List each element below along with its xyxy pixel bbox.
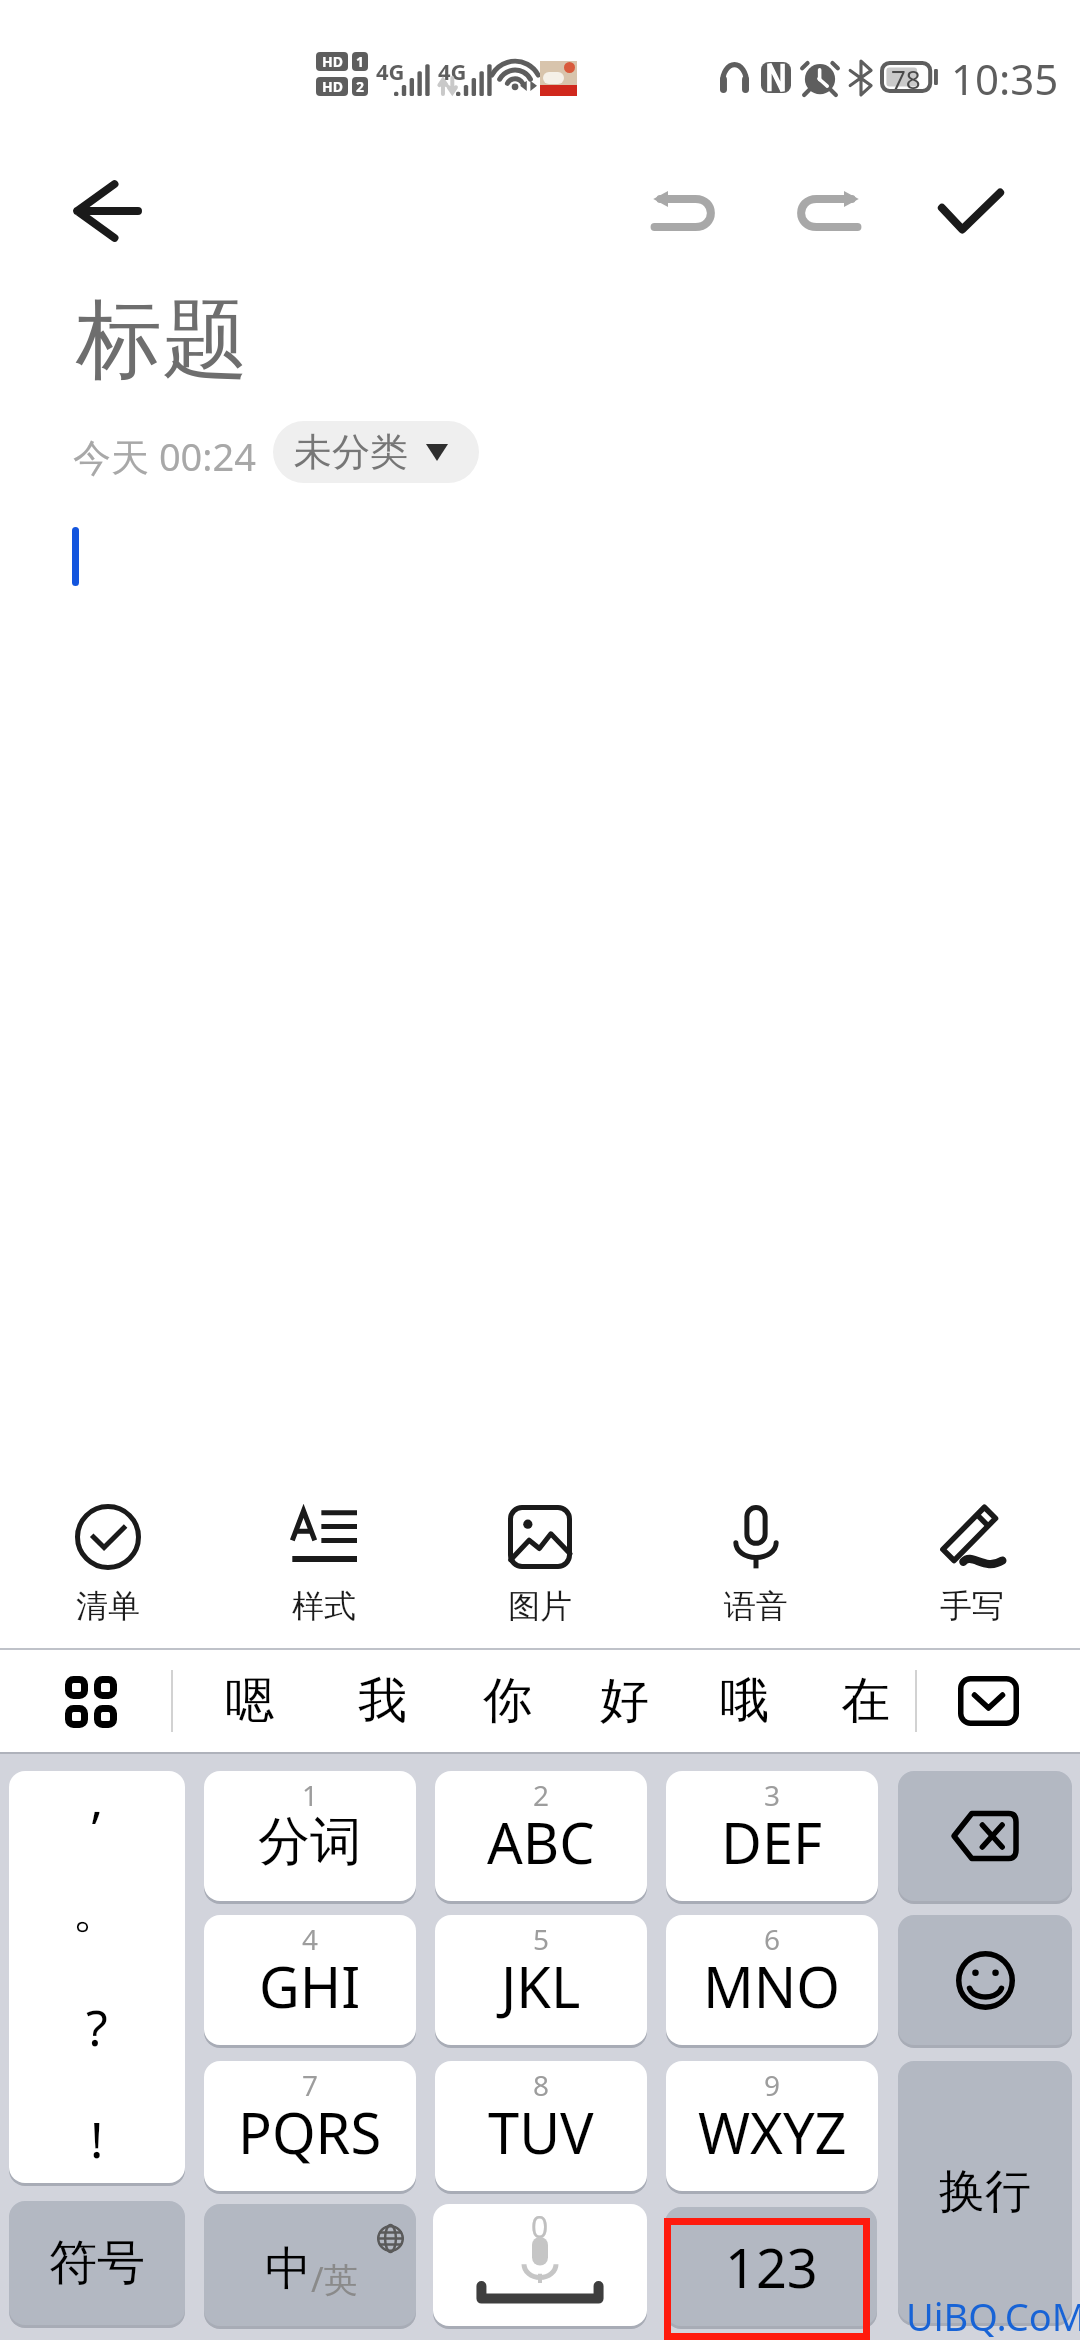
staticText: 0 [531, 2206, 549, 2247]
button[interactable]: Undo [629, 156, 739, 266]
staticText: 手写 [940, 1586, 1004, 1626]
button[interactable]: 样式 [216, 1502, 432, 1626]
button[interactable]: 哦 [700, 1653, 788, 1749]
staticText: 1 [356, 52, 365, 71]
staticText: ! [90, 2105, 104, 2173]
staticText: 123 [725, 2230, 818, 2304]
button[interactable]: 图片 [432, 1502, 648, 1626]
button[interactable]: 在 [821, 1653, 909, 1749]
button[interactable]: 嗯 [205, 1653, 293, 1749]
staticText: 嗯 [225, 1670, 274, 1732]
button[interactable]: 语音 [648, 1502, 864, 1626]
staticText: 今天 00:24 [73, 430, 257, 482]
staticText: 你 [483, 1670, 532, 1732]
button[interactable]: 你 [463, 1653, 551, 1749]
staticText: ABC [487, 1804, 595, 1880]
button[interactable]: Back [42, 156, 172, 266]
staticText: PQRS [238, 2094, 382, 2170]
button[interactable]: 未分类 [273, 421, 479, 483]
button[interactable]: 手写 [864, 1502, 1080, 1626]
staticText: 图片 [508, 1586, 572, 1626]
staticText: 清单 [76, 1586, 140, 1626]
button[interactable]: Space, voice input [433, 2204, 647, 2326]
staticText: 在 [841, 1670, 890, 1732]
staticText: 5 [533, 1920, 550, 1958]
staticText: 78 [891, 61, 921, 93]
button[interactable]: 5 [435, 1915, 647, 2045]
staticText: 4G [376, 56, 405, 86]
button[interactable]: 6 [666, 1915, 878, 2045]
staticText: 未分类 [294, 428, 408, 476]
button[interactable]: 2 [435, 1771, 647, 1901]
button[interactable]: Backspace [898, 1771, 1072, 1901]
staticText: 8 [533, 2066, 550, 2104]
staticText: 样式 [292, 1586, 356, 1626]
button[interactable]: 我 [338, 1653, 426, 1749]
staticText: 10:35 [951, 50, 1059, 107]
button[interactable]: 清单 [0, 1502, 216, 1626]
button[interactable]: 换行 [898, 2061, 1072, 2323]
staticText: 好 [600, 1670, 649, 1732]
button[interactable]: 123 [665, 2207, 877, 2326]
staticText: 6 [764, 1920, 781, 1958]
staticText: 中 [265, 2240, 311, 2298]
button[interactable]: Punctuation [9, 1771, 185, 2183]
staticText: 标题 [76, 286, 248, 394]
staticText: /英 [311, 2256, 358, 2302]
staticText: WXYZ [698, 2094, 847, 2170]
button[interactable]: Emoji [898, 1915, 1072, 2045]
staticText: HD [322, 77, 343, 96]
staticText: TUV [488, 2094, 594, 2170]
button[interactable]: 好 [580, 1653, 668, 1749]
button[interactable]: 符号 [9, 2201, 185, 2325]
button[interactable]: 中 [204, 2204, 416, 2326]
staticText: 4 [302, 1920, 319, 1958]
button[interactable]: Redo [773, 156, 883, 266]
staticText: 我 [358, 1670, 407, 1732]
staticText: 1 [302, 1776, 319, 1814]
staticText: 2 [533, 1776, 550, 1814]
button[interactable]: 7 [204, 2061, 416, 2191]
staticText: 哦 [720, 1670, 769, 1732]
staticText: 2 [356, 77, 365, 96]
staticText: HD [322, 52, 343, 71]
staticText: 语音 [724, 1586, 788, 1626]
staticText: 分词 [258, 1809, 362, 1875]
staticText: 。 [72, 1879, 122, 1942]
button[interactable]: 3 [666, 1771, 878, 1901]
button[interactable]: Keyboard menu [46, 1656, 136, 1746]
staticText: 4G [438, 56, 467, 86]
button[interactable]: 4 [204, 1915, 416, 2045]
staticText: , [90, 1771, 104, 1833]
staticText: 符号 [49, 2233, 145, 2293]
staticText: 换行 [939, 2163, 1031, 2221]
staticText: 3 [764, 1776, 781, 1814]
staticText: 9 [764, 2066, 781, 2104]
staticText: 7 [302, 2066, 319, 2104]
staticText: UiBQ.CoM [906, 2290, 1080, 2340]
button[interactable]: Done [916, 156, 1026, 266]
button[interactable]: 1 [204, 1771, 416, 1901]
staticText: JKL [501, 1948, 581, 2024]
button[interactable]: Collapse keyboard [943, 1661, 1033, 1741]
staticText: ? [86, 1993, 108, 2061]
staticText: MNO [703, 1948, 841, 2024]
staticText: GHI [259, 1948, 361, 2024]
staticText: DEF [721, 1804, 823, 1880]
button[interactable]: 8 [435, 2061, 647, 2191]
button[interactable]: 9 [666, 2061, 878, 2191]
